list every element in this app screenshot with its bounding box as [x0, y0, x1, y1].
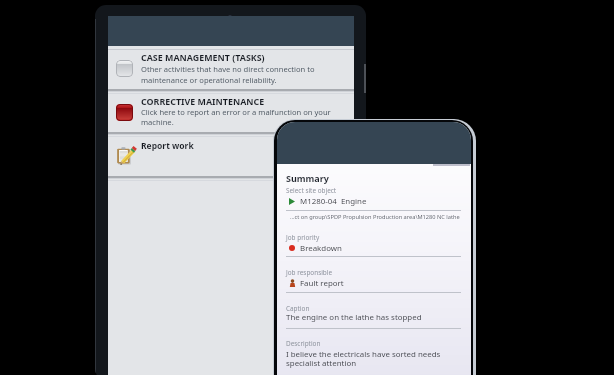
staticText: maintenance or operational reliability.	[141, 75, 277, 85]
staticText: Job priority	[286, 233, 320, 242]
staticText: specialist attention	[286, 358, 357, 369]
staticText: Description	[286, 339, 321, 348]
staticText: M1280-04 Engine	[300, 196, 367, 207]
staticText: Other activities that have no direct con…	[141, 64, 315, 74]
staticText: CORRECTIVE MAINTENANCE	[141, 95, 265, 107]
staticText: Job responsible	[286, 268, 333, 277]
staticText: Select site object	[286, 186, 337, 195]
button[interactable]: CORRECTIVE MAINTENANCE	[108, 94, 354, 133]
staticText: Fault report	[300, 278, 344, 289]
staticText: Breakdown	[300, 243, 342, 254]
staticText: CASE MANAGEMENT (TASKS)	[141, 51, 265, 63]
staticText: Summary	[286, 172, 329, 184]
staticText: Report work	[141, 140, 194, 152]
staticText: machine.	[141, 117, 174, 127]
button[interactable]: Report work	[108, 137, 354, 176]
button[interactable]: CASE MANAGEMENT (TASKS)	[108, 50, 354, 90]
staticText: ...ct on group\SPDP Propulsion Productio…	[290, 213, 460, 221]
staticText: The engine on the lathe has stopped	[286, 312, 422, 323]
staticText: Caption	[286, 304, 310, 313]
staticText: Click here to report an error or a malfu…	[141, 107, 331, 117]
staticText: I believe the electricals have sorted ne…	[286, 349, 441, 360]
